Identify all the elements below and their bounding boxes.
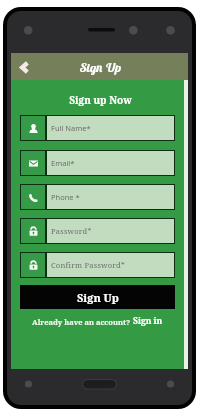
button[interactable]: Password*: [20, 218, 175, 244]
button[interactable]: Email*: [20, 150, 175, 176]
staticText: Password*: [51, 226, 92, 236]
staticText: Confirm Password*: [51, 260, 125, 270]
button[interactable]: Confirm Password*: [20, 252, 175, 278]
button[interactable]: Sign Up: [20, 285, 175, 309]
button[interactable]: Already have an account?: [20, 315, 175, 327]
staticText: Full Name*: [51, 123, 91, 133]
button[interactable]: Full Name*: [20, 115, 175, 141]
staticText: Sign in: [133, 315, 163, 327]
button[interactable]: Back: [14, 57, 34, 77]
staticText: Sign Up: [80, 59, 121, 75]
staticText: Sign Up: [77, 290, 119, 305]
staticText: Sign up Now: [12, 93, 189, 107]
staticText: Already have an account?: [32, 317, 131, 327]
staticText: Email*: [51, 158, 75, 168]
button[interactable]: Phone *: [20, 184, 175, 210]
staticText: Phone *: [51, 192, 80, 202]
